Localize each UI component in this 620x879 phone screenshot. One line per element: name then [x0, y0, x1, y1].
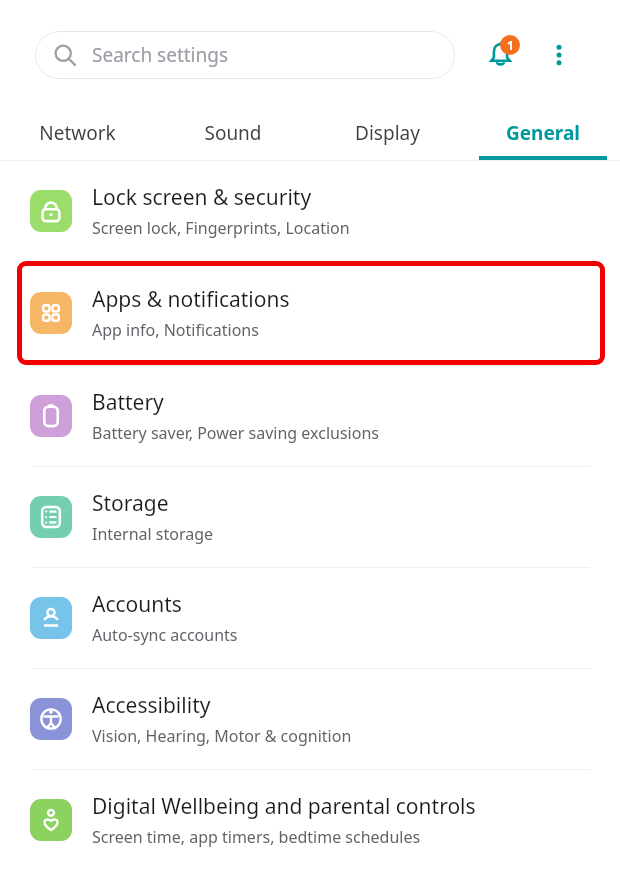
button[interactable]: Search settings — [35, 31, 455, 79]
button[interactable]: Sound — [155, 110, 310, 156]
staticText: Screen lock, Fingerprints, Location — [92, 217, 350, 239]
button[interactable]: More options — [537, 33, 581, 77]
button[interactable]: Apps & notifications — [17, 261, 605, 365]
staticText: Screen time, app timers, bedtime schedul… — [92, 826, 421, 848]
button[interactable]: Storage — [0, 467, 620, 567]
button[interactable]: Notifications — [475, 30, 525, 80]
staticText: Battery — [92, 388, 164, 417]
button[interactable]: Lock screen & security — [0, 161, 620, 261]
button[interactable]: Digital Wellbeing and parental controls — [0, 770, 620, 870]
staticText: Digital Wellbeing and parental controls — [92, 792, 476, 821]
staticText: Network — [39, 120, 116, 146]
button[interactable]: Display — [310, 110, 465, 156]
button[interactable]: General — [465, 110, 620, 156]
button[interactable]: Accounts — [0, 568, 620, 668]
staticText: Battery saver, Power saving exclusions — [92, 422, 379, 444]
staticText: Apps & notifications — [92, 285, 290, 314]
staticText: Accounts — [92, 590, 182, 619]
staticText: Internal storage — [92, 523, 214, 545]
staticText: Auto-sync accounts — [92, 624, 238, 646]
button[interactable]: Accessibility — [0, 669, 620, 769]
staticText: General — [506, 120, 580, 146]
staticText: Vision, Hearing, Motor & cognition — [92, 725, 352, 747]
staticText: Lock screen & security — [92, 183, 312, 212]
staticText: Storage — [92, 489, 169, 518]
staticText: Accessibility — [92, 691, 211, 720]
staticText: Sound — [204, 120, 262, 146]
staticText: Display — [355, 120, 420, 146]
button[interactable]: Network — [0, 110, 155, 156]
staticText: Search settings — [92, 42, 229, 68]
staticText: 1 — [507, 37, 514, 53]
button[interactable]: Battery — [0, 366, 620, 466]
staticText: App info, Notifications — [92, 319, 259, 341]
